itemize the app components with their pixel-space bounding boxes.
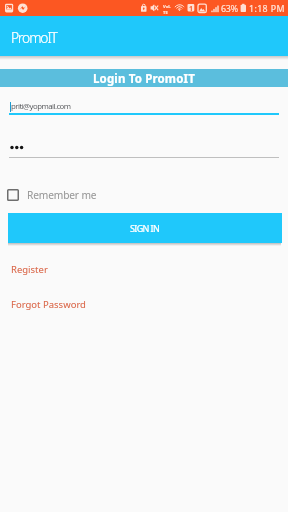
button[interactable]: Email address field (9, 96, 279, 115)
staticText: 1:18 PM (249, 3, 285, 15)
button[interactable]: SIGN IN (8, 213, 282, 243)
staticText: Remember me (27, 188, 97, 202)
staticText: SIGN IN (130, 222, 160, 234)
button[interactable]: Password field (9, 140, 279, 158)
button[interactable]: PromoIT (0, 16, 288, 56)
staticText: TE (163, 10, 168, 16)
staticText: 63% (221, 3, 238, 15)
button[interactable]: Register (11, 263, 48, 276)
staticText: 1 (189, 4, 193, 13)
staticText: Forgot Password (11, 298, 86, 311)
staticText: Login To PromoIT (93, 71, 195, 87)
button[interactable]: Forgot Password (11, 298, 86, 311)
staticText: Register (11, 263, 48, 276)
staticText: PromoIT (11, 28, 57, 47)
staticText: priti@yopmail.com (11, 101, 71, 112)
button[interactable]: Remember me (7, 188, 97, 202)
staticText: VoL (163, 4, 171, 10)
